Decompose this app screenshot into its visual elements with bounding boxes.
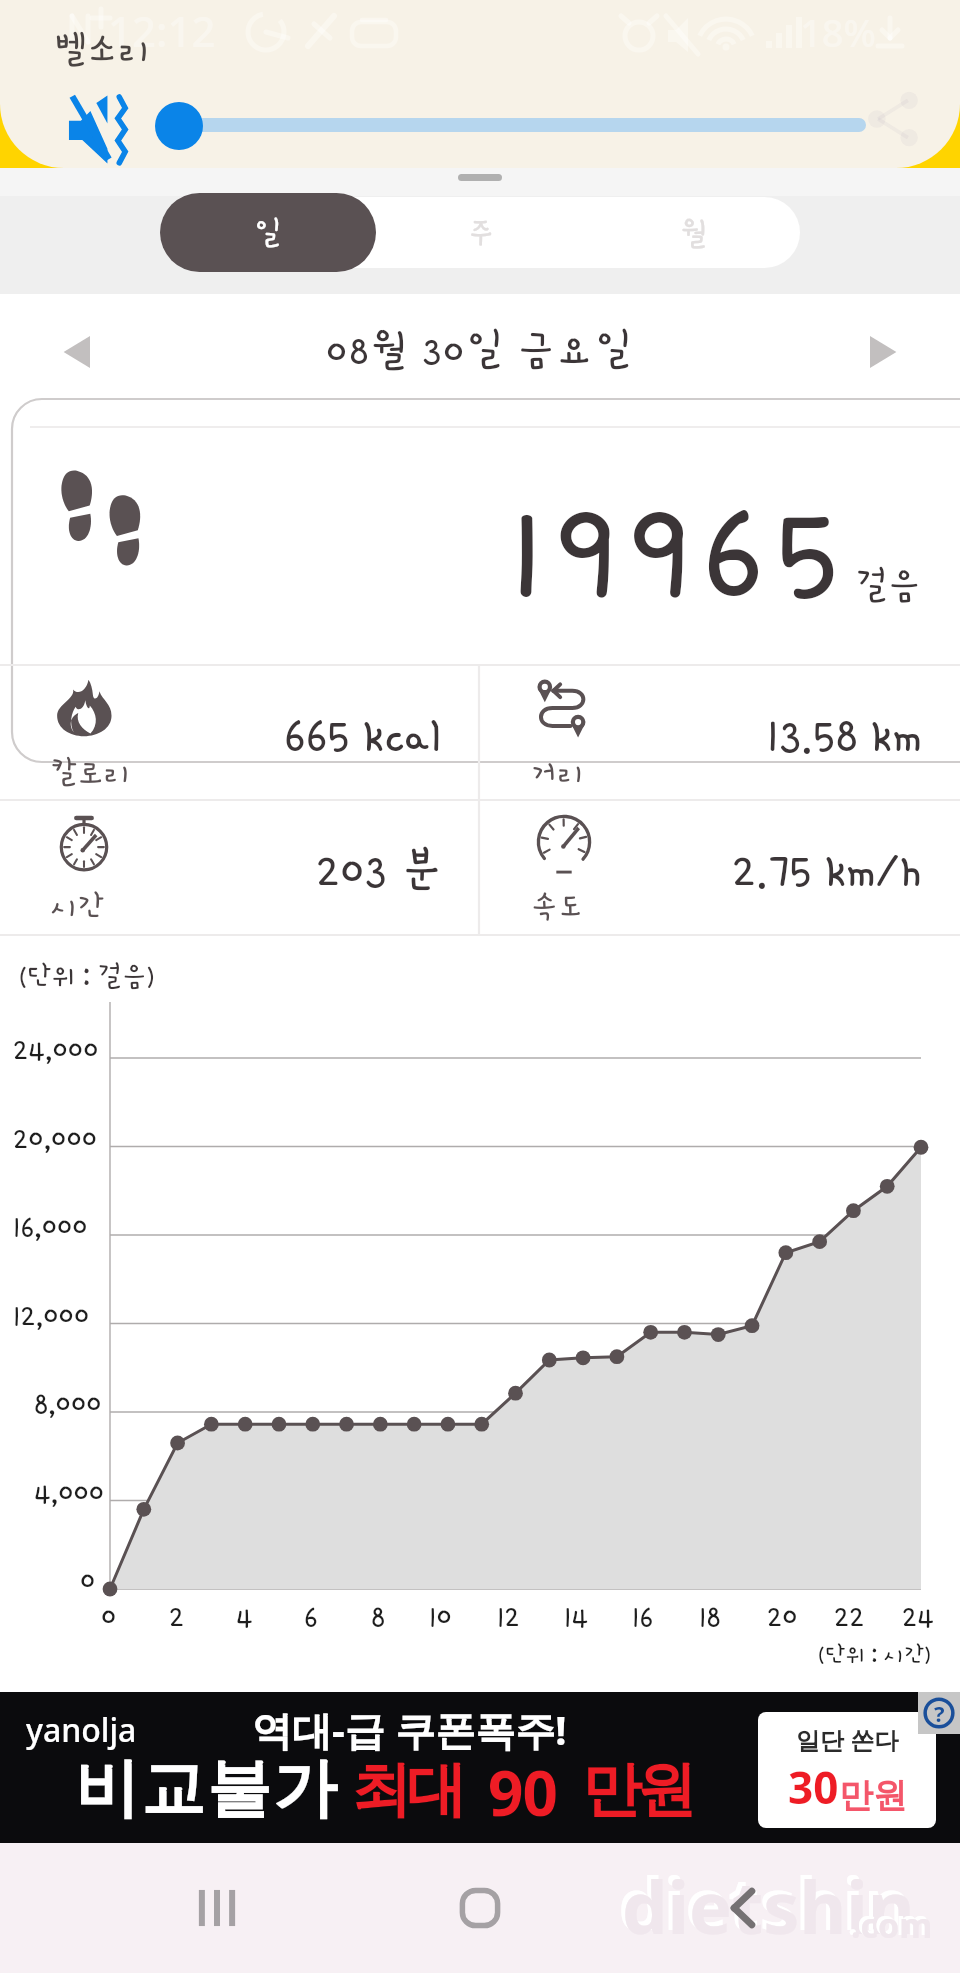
staticText: 14 bbox=[564, 1600, 589, 1633]
staticText: 19965 bbox=[510, 476, 851, 626]
button[interactable]: Recents bbox=[171, 1862, 263, 1954]
staticText: 일단 쏜다 bbox=[796, 1723, 899, 1756]
staticText: 22 bbox=[834, 1600, 865, 1633]
staticText: .com bbox=[851, 1902, 933, 1948]
button[interactable]: Home bbox=[434, 1862, 526, 1954]
staticText: 2.75 km/h bbox=[732, 844, 922, 896]
staticText: 8 bbox=[371, 1600, 386, 1633]
staticText: 걸음 bbox=[856, 566, 921, 606]
staticText: 만원 bbox=[584, 1752, 694, 1828]
button[interactable]: 칼로리 bbox=[0, 666, 480, 800]
staticText: 주 bbox=[467, 216, 495, 250]
staticText: 8,000 bbox=[34, 1387, 102, 1420]
staticText: 벨소리 bbox=[54, 30, 151, 70]
staticText: 시간 bbox=[51, 890, 105, 923]
staticText: 거리 bbox=[531, 756, 585, 789]
staticText: 6 bbox=[304, 1600, 318, 1633]
staticText: 역대-급 쿠폰폭주! bbox=[252, 1702, 567, 1757]
staticText: ? bbox=[934, 1698, 945, 1728]
button[interactable]: 19965 bbox=[0, 398, 960, 665]
button[interactable]: 주 bbox=[374, 197, 587, 268]
staticText: 비교불가 bbox=[74, 1748, 338, 1829]
button[interactable]: Previous day bbox=[42, 316, 114, 388]
staticText: 18 bbox=[699, 1600, 721, 1633]
staticText: 0 bbox=[80, 1564, 96, 1597]
staticText: 2 bbox=[169, 1600, 185, 1633]
staticText: 18% bbox=[800, 6, 876, 58]
staticText: 13.58 km bbox=[767, 709, 922, 761]
button[interactable]: 속도 bbox=[480, 800, 960, 935]
staticText: 24,000 bbox=[13, 1033, 99, 1066]
staticText: 20,000 bbox=[13, 1122, 98, 1155]
staticText: 최대 bbox=[354, 1752, 464, 1828]
staticText: 203 분 bbox=[316, 844, 442, 896]
staticText: 16 bbox=[632, 1600, 654, 1633]
staticText: 월 bbox=[680, 216, 708, 250]
staticText: 칼로리 bbox=[51, 756, 131, 789]
staticText: 12:12 bbox=[108, 2, 216, 59]
button[interactable]: 월 bbox=[587, 197, 800, 268]
staticText: .com bbox=[848, 1899, 930, 1945]
staticText: 0 bbox=[101, 1600, 117, 1633]
button[interactable]: Ad info bbox=[918, 1692, 960, 1734]
button[interactable]: 거리 bbox=[480, 666, 960, 800]
staticText: 속도 bbox=[531, 890, 585, 923]
button[interactable]: yanolja bbox=[0, 1692, 960, 1843]
staticText: 만원 bbox=[839, 1774, 907, 1817]
staticText: 4,000 bbox=[34, 1476, 105, 1509]
staticText: 08월 30일 금요일 bbox=[326, 327, 634, 373]
staticText: yanolja bbox=[26, 1708, 137, 1752]
staticText: 665 kcal bbox=[284, 709, 442, 761]
staticText: dietshin bbox=[618, 1853, 911, 1951]
button[interactable]: Share bbox=[862, 88, 924, 150]
staticText: 24 bbox=[902, 1600, 935, 1633]
button[interactable]: 시간 bbox=[0, 800, 480, 935]
staticText: (단위 : 시간) bbox=[818, 1642, 931, 1667]
staticText: 90 bbox=[488, 1750, 557, 1834]
button[interactable]: Back bbox=[697, 1862, 789, 1954]
staticText: dietshin bbox=[622, 1857, 915, 1955]
button[interactable]: Volume slider bbox=[155, 102, 203, 150]
button[interactable]: Next day bbox=[846, 316, 918, 388]
button[interactable]: 일 bbox=[160, 193, 376, 272]
staticText: 12 bbox=[497, 1600, 520, 1633]
staticText: 20 bbox=[767, 1600, 798, 1633]
button[interactable]: Mute bbox=[66, 94, 140, 168]
staticText: 16,000 bbox=[13, 1210, 88, 1243]
staticText: (단위 : 걸음) bbox=[19, 962, 154, 992]
staticText: 4 bbox=[236, 1600, 253, 1633]
staticText: 일 bbox=[254, 216, 282, 250]
staticText: 10 bbox=[429, 1600, 452, 1633]
staticText: 30 bbox=[788, 1757, 839, 1817]
staticText: 12,000 bbox=[13, 1299, 90, 1332]
